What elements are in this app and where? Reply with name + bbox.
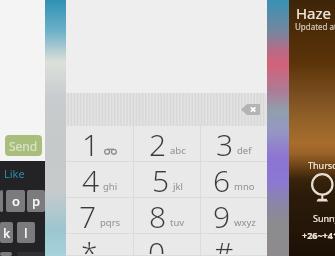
button[interactable]: o <box>6 190 25 212</box>
staticText: pqrs <box>100 216 121 229</box>
button[interactable]: 2 <box>134 126 200 162</box>
staticText: 6 <box>213 160 231 196</box>
staticText: 1 <box>82 124 100 160</box>
staticText: Sunny <box>313 212 335 224</box>
button[interactable]: k <box>0 222 13 243</box>
staticText: Updated at W <box>295 21 335 32</box>
button[interactable]: 5 <box>134 162 200 198</box>
staticText: l <box>24 224 28 242</box>
button[interactable]: 1 <box>66 126 133 162</box>
staticText: 9 <box>213 196 231 232</box>
staticText: Thursday <box>308 159 335 171</box>
staticText: jkl <box>173 180 183 193</box>
button[interactable]: Send <box>5 135 42 156</box>
staticText: Send <box>9 138 38 154</box>
staticText: 8 <box>149 196 167 232</box>
button[interactable]: Like <box>4 166 25 181</box>
staticText: 5 <box>152 160 170 196</box>
staticText: def <box>237 144 252 157</box>
staticText: tuv <box>170 216 185 229</box>
staticText: 2 <box>149 124 167 160</box>
button[interactable]: Backspace <box>241 104 260 115</box>
staticText: 0 <box>148 232 166 254</box>
staticText: 4 <box>82 160 100 196</box>
button[interactable]: 9 <box>201 198 267 234</box>
button[interactable]: * <box>66 234 133 256</box>
staticText: k <box>3 224 11 242</box>
button[interactable]: 8 <box>134 198 200 234</box>
button[interactable]: 4 <box>66 162 133 198</box>
button[interactable]: 0 <box>134 234 200 256</box>
staticText: mno <box>234 180 255 193</box>
button[interactable]: 3 <box>201 126 267 162</box>
staticText: wxyz <box>234 216 256 229</box>
staticText: Haze <box>296 3 332 23</box>
button[interactable]: p <box>27 190 45 212</box>
staticText: p <box>32 192 41 210</box>
button[interactable]: l <box>17 222 35 243</box>
button[interactable] <box>0 252 12 256</box>
button[interactable]: Haze <box>289 0 335 256</box>
staticText: o <box>12 192 20 210</box>
staticText: 7 <box>79 196 97 232</box>
staticText: +26~+41 <box>302 229 335 241</box>
button[interactable]: # <box>201 234 267 256</box>
button[interactable]: 6 <box>201 162 267 198</box>
staticText: # <box>214 232 234 254</box>
button[interactable]: 7 <box>66 198 133 234</box>
staticText: abc <box>170 144 186 157</box>
staticText: 3 <box>216 124 234 160</box>
staticText: ghi <box>103 180 118 193</box>
staticText: * <box>81 232 98 254</box>
button[interactable] <box>0 190 3 212</box>
